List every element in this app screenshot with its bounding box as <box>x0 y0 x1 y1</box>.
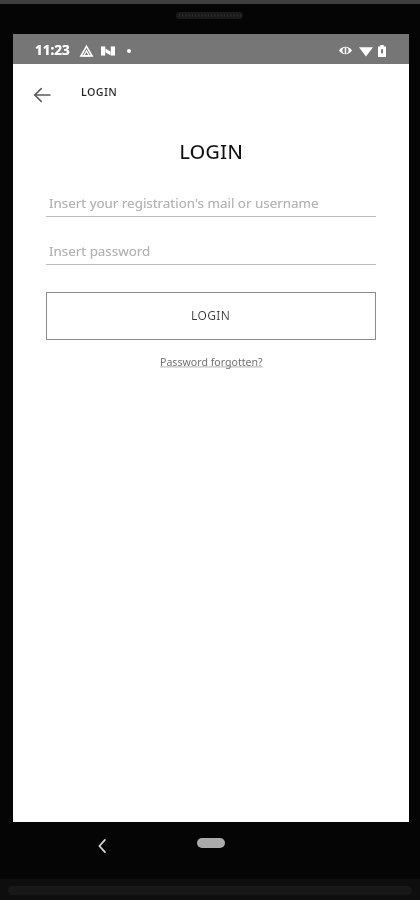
button[interactable]: Insert your registration's mail or usern… <box>46 192 376 222</box>
staticText: LOGIN <box>81 84 118 99</box>
button[interactable]: Navigate up <box>27 80 57 110</box>
staticText: LOGIN <box>13 137 409 165</box>
button[interactable]: Password forgotten? <box>154 352 269 372</box>
button[interactable]: Back <box>88 831 118 861</box>
staticText: 11:23 <box>35 41 70 59</box>
staticText: Password forgotten? <box>160 355 263 369</box>
staticText: Insert password <box>49 242 151 260</box>
staticText: Insert your registration's mail or usern… <box>49 194 319 212</box>
staticText: LOGIN <box>191 307 231 323</box>
button[interactable]: Insert password <box>46 240 376 270</box>
button[interactable]: Home <box>197 838 225 848</box>
button[interactable]: LOGIN <box>46 292 376 340</box>
